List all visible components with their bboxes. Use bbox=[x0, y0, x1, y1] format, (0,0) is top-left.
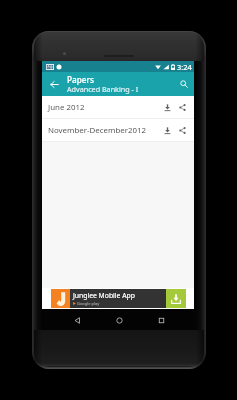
button[interactable]: Recents bbox=[154, 313, 168, 327]
staticText: Advanced Banking - I bbox=[67, 84, 139, 94]
button[interactable]: June 2012 bbox=[42, 96, 194, 118]
staticText: Google play bbox=[77, 301, 100, 306]
staticText: 3:24 bbox=[177, 62, 192, 72]
staticText: Papers bbox=[67, 74, 94, 85]
button[interactable]: Download bbox=[160, 123, 174, 137]
staticText: June 2012 bbox=[48, 102, 160, 113]
button[interactable]: Junglee Mobile App bbox=[51, 289, 186, 308]
button[interactable]: Back bbox=[42, 72, 67, 96]
button[interactable]: Share bbox=[175, 100, 189, 114]
button[interactable]: November-December2012 bbox=[42, 119, 194, 141]
staticText: Junglee Mobile App bbox=[73, 291, 135, 300]
button[interactable]: Back bbox=[70, 313, 84, 327]
staticText: November-December2012 bbox=[48, 125, 160, 136]
button[interactable]: Home bbox=[112, 313, 126, 327]
button[interactable]: Search bbox=[174, 72, 194, 96]
button[interactable]: Install bbox=[166, 289, 186, 308]
button[interactable]: Download bbox=[160, 100, 174, 114]
button[interactable]: Share bbox=[175, 123, 189, 137]
